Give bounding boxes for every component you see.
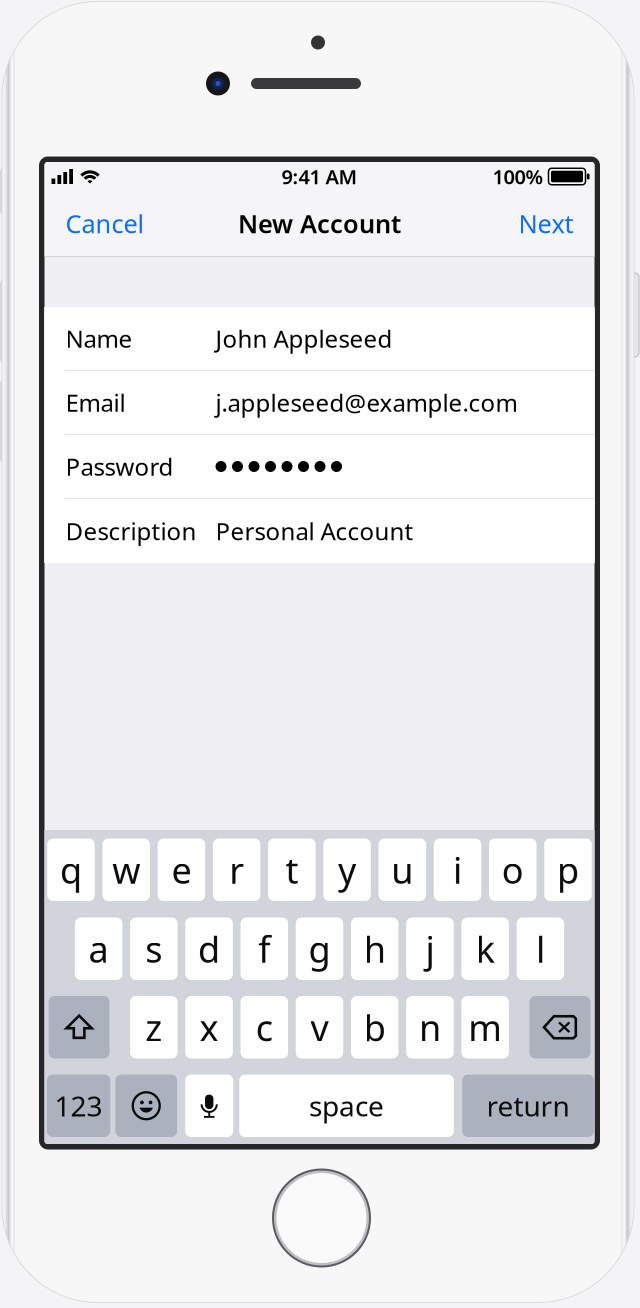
button[interactable]: h	[351, 917, 398, 980]
button[interactable]: 123	[47, 1074, 110, 1137]
staticText: Personal Account	[215, 515, 413, 547]
button[interactable]: Description	[44, 499, 594, 563]
staticText: k	[476, 925, 495, 973]
staticText: z	[145, 1003, 162, 1051]
staticText: d	[198, 925, 220, 973]
button[interactable]: u	[379, 838, 426, 901]
button[interactable]: x	[185, 996, 233, 1058]
button[interactable]: m	[461, 996, 509, 1058]
staticText: r	[229, 846, 244, 894]
button[interactable]: o	[489, 838, 536, 901]
staticText: t	[285, 846, 298, 894]
button[interactable]: k	[461, 917, 509, 980]
staticText: John Appleseed	[215, 323, 392, 354]
button[interactable]: Next	[508, 193, 594, 253]
staticText: v	[310, 1003, 328, 1051]
staticText: Description	[65, 515, 196, 547]
staticText: e	[171, 846, 191, 894]
staticText: a	[89, 925, 109, 973]
staticText: y	[338, 846, 356, 894]
staticText: 123	[55, 1087, 103, 1124]
staticText: Email	[65, 387, 125, 418]
button[interactable]: Name	[44, 307, 594, 371]
button[interactable]: w	[102, 838, 150, 901]
button[interactable]: j	[406, 917, 454, 980]
button[interactable]: Password	[44, 435, 594, 499]
staticText: n	[419, 1003, 441, 1051]
button[interactable]: l	[517, 917, 564, 980]
staticText: 100%	[492, 163, 543, 190]
button[interactable]: i	[434, 838, 481, 901]
staticText: f	[258, 925, 270, 973]
button[interactable]: r	[213, 838, 260, 901]
staticText: Cancel	[65, 207, 144, 240]
button[interactable]: c	[240, 996, 288, 1058]
staticText: space	[309, 1087, 384, 1124]
staticText: Name	[65, 323, 132, 354]
button[interactable]: Emoji	[115, 1074, 177, 1137]
button[interactable]: v	[296, 996, 343, 1058]
staticText: New Account	[238, 207, 401, 240]
button[interactable]: Delete	[529, 996, 590, 1058]
button[interactable]: f	[240, 917, 288, 980]
button[interactable]: Cancel	[44, 193, 154, 253]
button[interactable]: p	[544, 838, 592, 901]
staticText: w	[112, 846, 140, 894]
button[interactable]: b	[351, 996, 398, 1058]
staticText: j.appleseed@example.com	[215, 387, 517, 418]
button[interactable]: t	[268, 838, 316, 901]
staticText: g	[308, 925, 330, 973]
staticText: q	[60, 846, 82, 894]
button[interactable]: d	[185, 917, 233, 980]
button[interactable]: Email	[44, 371, 594, 435]
staticText: c	[256, 1003, 273, 1051]
staticText: Next	[518, 207, 573, 240]
staticText: Password	[65, 451, 173, 482]
button[interactable]: a	[75, 917, 122, 980]
button[interactable]: n	[406, 996, 454, 1058]
button[interactable]: Dictate	[185, 1074, 233, 1137]
staticText: o	[502, 846, 524, 894]
button[interactable]: Shift	[49, 996, 110, 1058]
button[interactable]: y	[323, 838, 371, 901]
staticText: 9:41 AM	[281, 163, 357, 190]
staticText: j	[425, 925, 434, 973]
button[interactable]: return	[462, 1074, 594, 1137]
button[interactable]: s	[130, 917, 178, 980]
staticText: s	[145, 925, 162, 973]
button[interactable]: e	[158, 838, 205, 901]
button[interactable]: z	[130, 996, 178, 1058]
button[interactable]: space	[239, 1074, 454, 1137]
button[interactable]: g	[296, 917, 343, 980]
staticText: l	[536, 925, 545, 973]
staticText: h	[364, 925, 386, 973]
staticText: return	[486, 1087, 569, 1124]
staticText: p	[557, 846, 579, 894]
staticText: x	[200, 1003, 219, 1051]
button[interactable]: q	[47, 838, 95, 901]
staticText: b	[364, 1003, 386, 1051]
staticText: i	[453, 846, 462, 894]
staticText: u	[391, 846, 413, 894]
staticText: m	[468, 1003, 502, 1051]
